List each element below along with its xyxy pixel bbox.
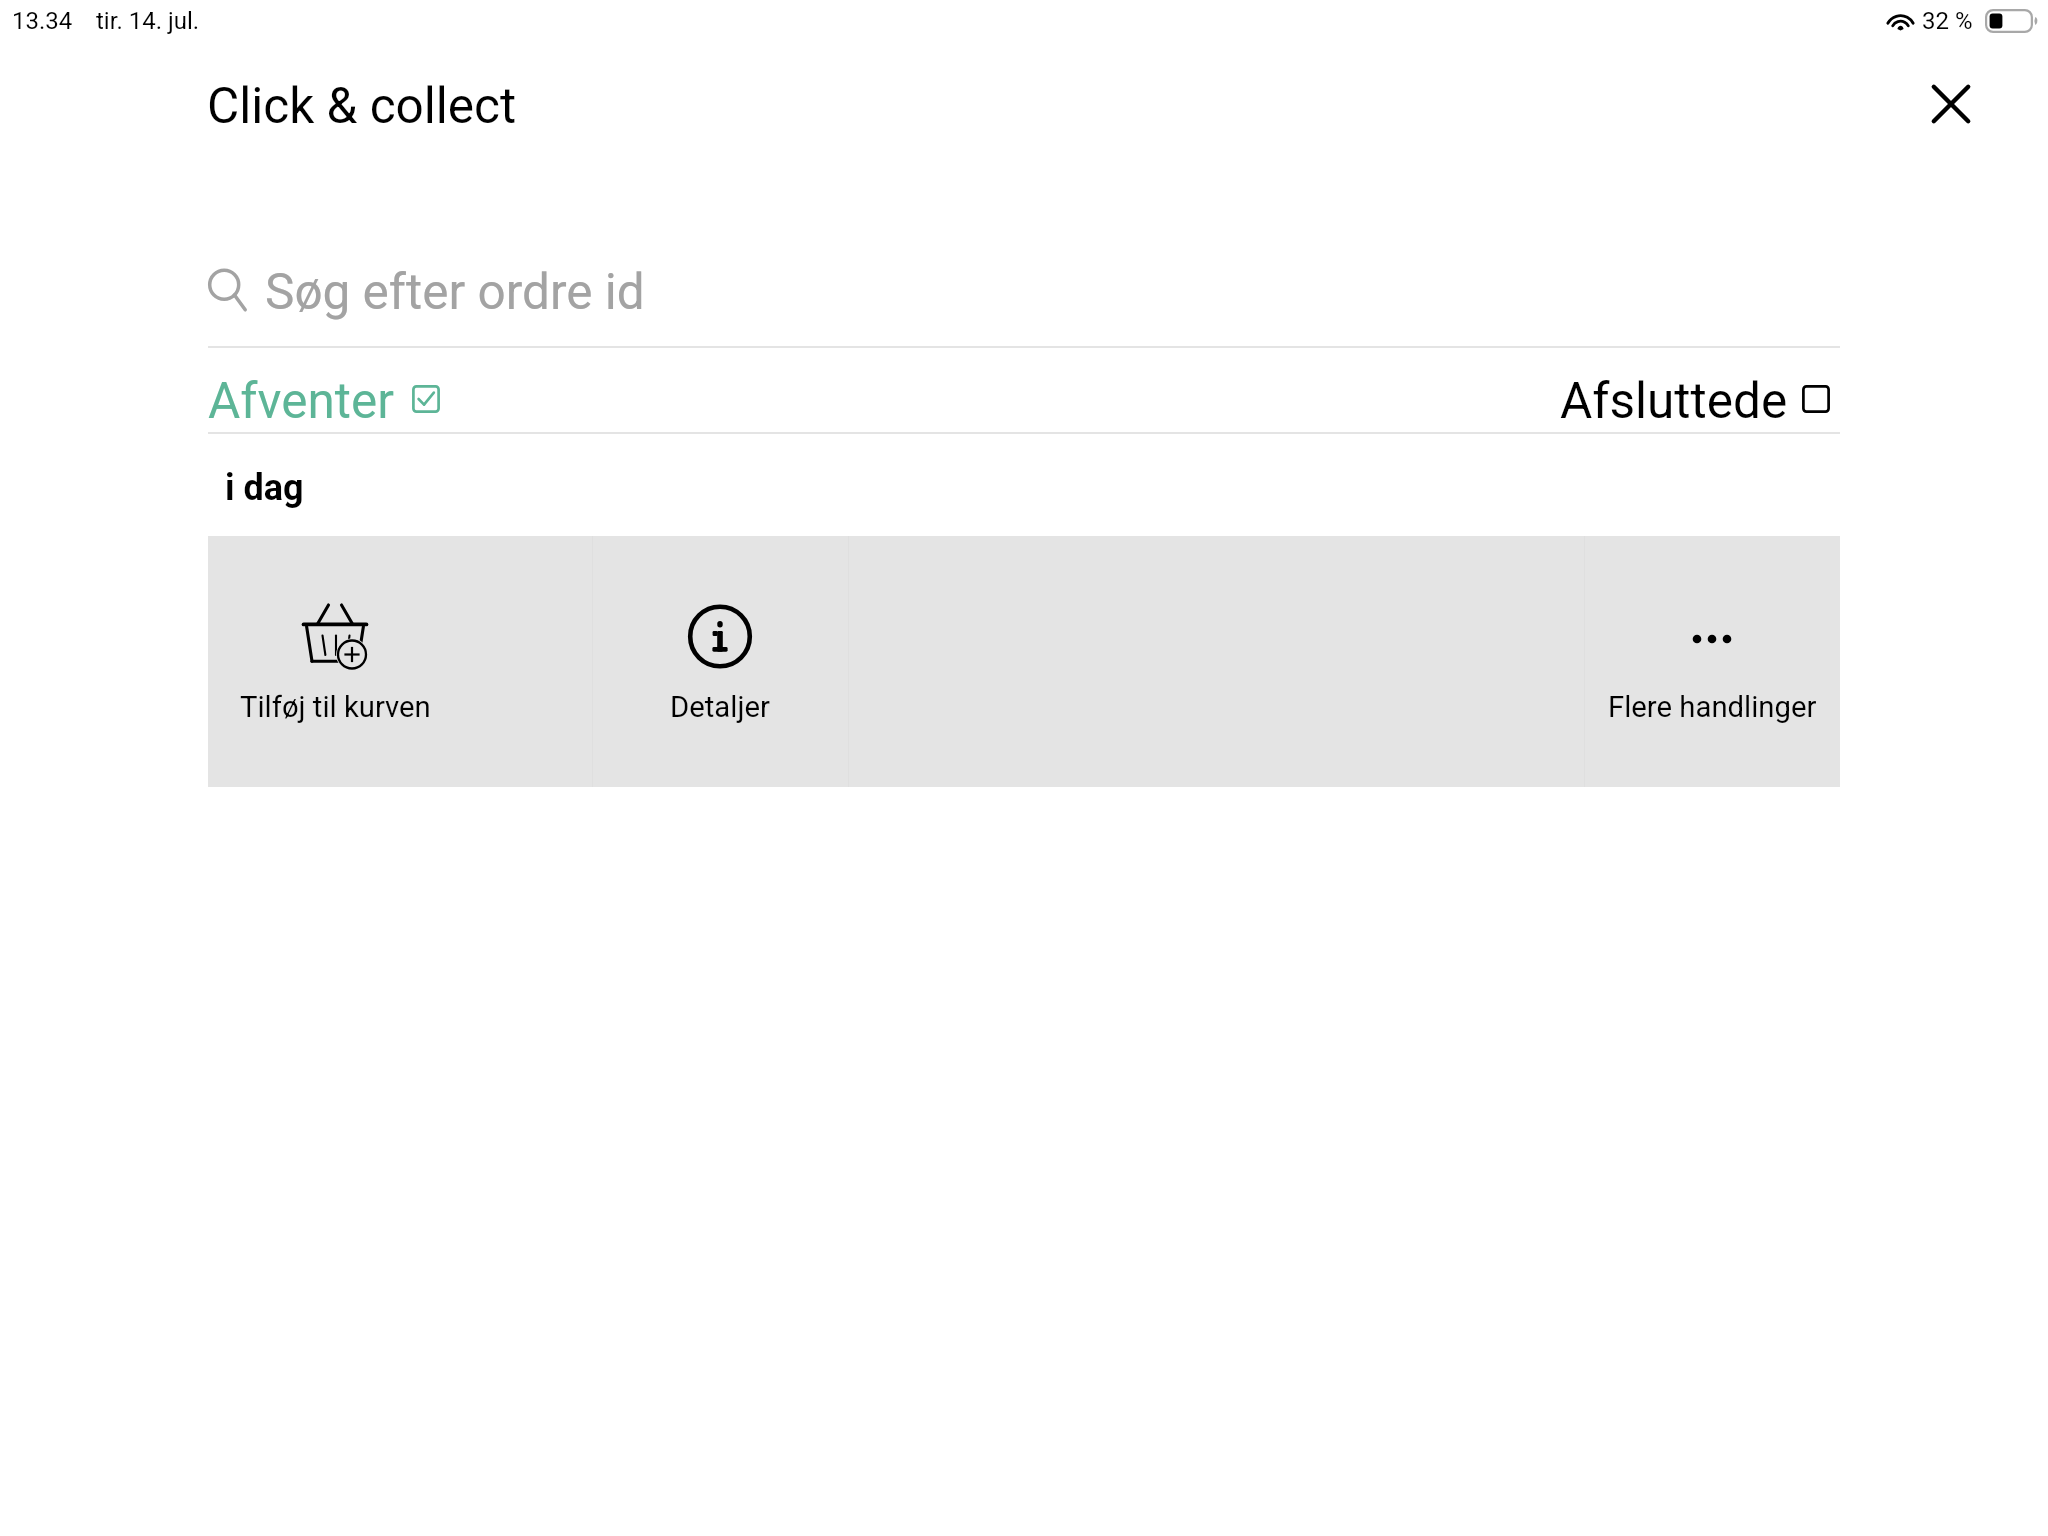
- staticText: Afsluttede: [1560, 372, 1788, 430]
- staticText: Søg efter ordre id: [265, 263, 645, 321]
- button[interactable]: Afventer: [208, 360, 440, 445]
- staticText: i dag: [225, 467, 304, 509]
- button[interactable]: Detaljer: [592, 536, 848, 787]
- staticText: Tilføj til kurven: [240, 690, 431, 724]
- staticText: 32 %: [1922, 7, 1973, 35]
- button[interactable]: Flere handlinger: [1584, 536, 1840, 787]
- staticText: Click & collect: [207, 77, 517, 135]
- staticText: Detaljer: [670, 690, 770, 724]
- staticText: Afventer: [208, 372, 394, 430]
- staticText: 13.34: [12, 7, 73, 35]
- staticText: tir. 14. jul.: [96, 7, 200, 35]
- button[interactable]: Close: [1913, 66, 1989, 142]
- button[interactable]: Søg efter ordre id: [208, 250, 1840, 346]
- staticText: Flere handlinger: [1608, 690, 1817, 724]
- button[interactable]: Afsluttede: [1560, 360, 1830, 445]
- button[interactable]: Tilføj til kurven: [208, 536, 592, 787]
